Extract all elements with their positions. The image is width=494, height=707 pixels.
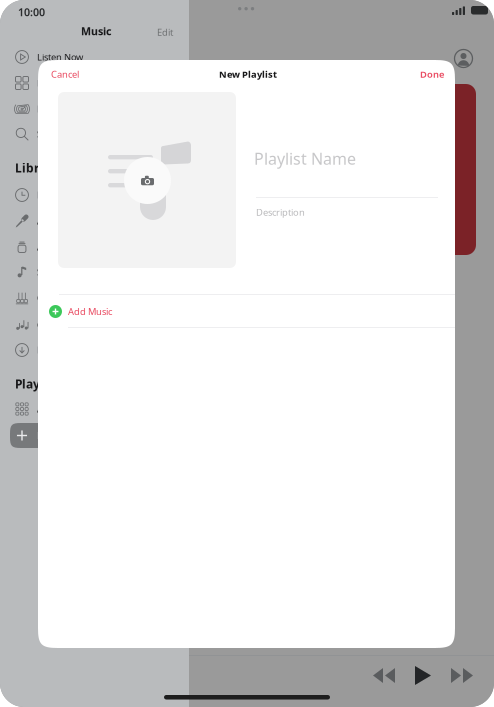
staticText: Songs: [37, 266, 64, 278]
button[interactable]: Search: [0, 121, 189, 147]
staticText: Artists: [37, 215, 63, 227]
button[interactable]: Add Music: [38, 295, 455, 328]
staticText: Description: [256, 206, 305, 218]
staticText: All Playlists: [37, 403, 82, 415]
button[interactable]: Genres: [0, 312, 189, 338]
staticText: New Playlist: [37, 429, 87, 442]
button[interactable]: Artists: [0, 208, 189, 234]
button[interactable]: Edit: [152, 21, 178, 43]
button[interactable]: Downloaded: [0, 337, 189, 363]
staticText: New Playlist: [219, 68, 277, 80]
staticText: Radio: [37, 103, 62, 115]
button[interactable]: Previous: [367, 662, 401, 689]
button[interactable]: Account: [450, 45, 477, 72]
staticText: 10:00: [18, 5, 45, 19]
button[interactable]: Browse: [0, 70, 189, 96]
staticText: Add Music: [68, 305, 112, 318]
staticText: Search: [37, 128, 66, 140]
button[interactable]: Radio: [0, 96, 189, 122]
staticText: Cancel: [51, 68, 79, 80]
button[interactable]: New Playlist: [10, 423, 182, 448]
staticText: Edit: [157, 26, 173, 38]
button[interactable]: Recently Added: [0, 182, 189, 208]
staticText: Genres: [37, 319, 68, 331]
staticText: Recently Added: [37, 189, 104, 201]
staticText: Done: [420, 68, 444, 80]
staticText: Listen Now: [37, 51, 83, 63]
staticText: Library: [15, 160, 58, 176]
staticText: Browse: [37, 77, 68, 89]
staticText: Albums: [37, 241, 70, 253]
button[interactable]: Songs: [0, 259, 189, 285]
button[interactable]: Cancel: [45, 62, 85, 86]
staticText: Composers: [37, 292, 87, 304]
staticText: Playlist Name: [254, 148, 356, 169]
button[interactable]: Composers: [0, 285, 189, 311]
staticText: Music: [81, 24, 112, 38]
staticText: Playlists: [15, 376, 65, 392]
staticText: Downloaded: [37, 344, 92, 356]
button[interactable]: All Playlists: [0, 396, 189, 422]
button[interactable]: Listen Now: [0, 44, 189, 70]
button[interactable]: Done: [414, 62, 450, 86]
button[interactable]: Play: [409, 660, 438, 691]
button[interactable]: Next: [445, 662, 479, 689]
button[interactable]: Albums: [0, 234, 189, 260]
